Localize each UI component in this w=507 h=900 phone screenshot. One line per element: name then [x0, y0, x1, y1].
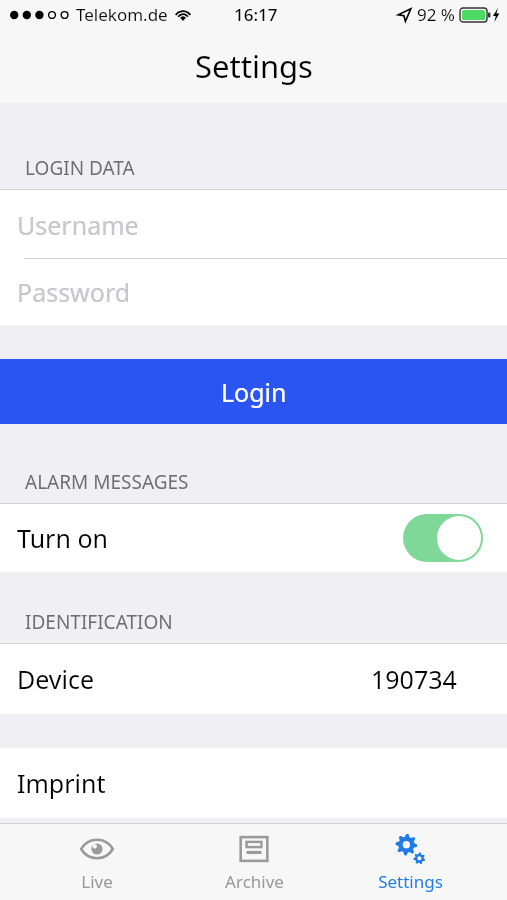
staticText: Device: [17, 662, 95, 696]
button[interactable]: Settings: [350, 824, 470, 900]
button[interactable]: Archive: [194, 824, 314, 900]
staticText: ALARM MESSAGES: [25, 469, 189, 495]
button[interactable]: Turn on: [0, 504, 507, 572]
button[interactable]: Live: [37, 824, 157, 900]
button[interactable]: Device: [0, 644, 507, 714]
staticText: LOGIN DATA: [25, 155, 135, 181]
button[interactable]: Turn on alarm messages: [403, 514, 483, 562]
button[interactable]: Imprint: [0, 748, 507, 818]
staticText: Login: [221, 375, 287, 409]
button[interactable]: Login: [0, 359, 507, 424]
staticText: Username: [17, 208, 139, 242]
staticText: Settings: [378, 870, 443, 893]
staticText: Telekom.de: [76, 3, 168, 26]
button[interactable]: Username: [0, 190, 507, 259]
staticText: Live: [81, 870, 113, 893]
staticText: Password: [17, 275, 131, 309]
button[interactable]: Password: [0, 259, 507, 325]
staticText: 92 %: [417, 3, 455, 26]
staticText: 190734: [371, 662, 457, 696]
staticText: Settings: [195, 45, 313, 87]
staticText: Imprint: [17, 766, 106, 800]
staticText: Turn on: [17, 521, 108, 555]
staticText: IDENTIFICATION: [25, 609, 173, 635]
staticText: 16:17: [234, 3, 278, 26]
staticText: Archive: [225, 870, 284, 893]
